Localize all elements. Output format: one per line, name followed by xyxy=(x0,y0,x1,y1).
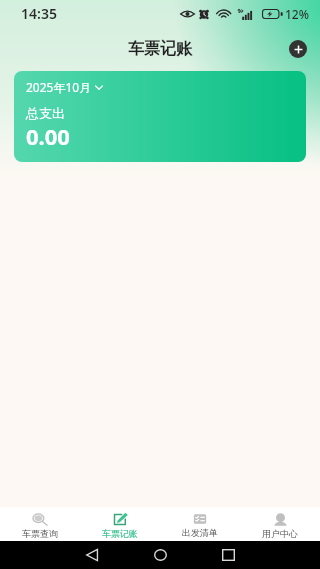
staticText: 车票查询 xyxy=(22,528,58,539)
button[interactable]: Home xyxy=(142,541,178,569)
staticText: 车票记账 xyxy=(102,528,138,539)
staticText: 车票记账 xyxy=(128,39,192,59)
button[interactable]: 车票查询 xyxy=(0,510,80,539)
button[interactable]: Recent apps xyxy=(210,541,246,569)
staticText: 2025年10月 xyxy=(26,79,92,95)
staticText: 12% xyxy=(285,6,309,22)
staticText: 14:35 xyxy=(21,4,57,23)
button[interactable]: 用户中心 xyxy=(240,510,320,539)
staticText: 出发清单 xyxy=(182,527,218,538)
button[interactable]: 车票记账 xyxy=(80,509,160,539)
button[interactable]: Back xyxy=(74,541,110,569)
staticText: 总支出 xyxy=(26,105,65,121)
button[interactable]: 出发清单 xyxy=(160,510,240,538)
button[interactable]: 2025年10月 xyxy=(14,71,306,162)
staticText: 0.00 xyxy=(26,121,70,151)
staticText: 用户中心 xyxy=(262,528,298,539)
button[interactable]: Add record xyxy=(289,40,307,58)
